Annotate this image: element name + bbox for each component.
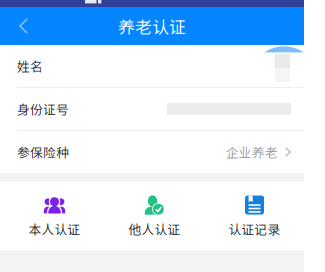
button[interactable]: 认证记录	[204, 182, 304, 250]
staticText: 他人认证	[128, 220, 180, 238]
button[interactable]: Back	[0, 7, 46, 45]
staticText: 参保险种	[17, 143, 69, 161]
button[interactable]: 他人认证	[104, 182, 204, 250]
staticText: 本人认证	[28, 220, 80, 238]
staticText: 认证记录	[228, 220, 280, 238]
staticText: 姓名	[17, 57, 43, 75]
button[interactable]: 本人认证	[4, 182, 104, 250]
staticText: 养老认证	[118, 14, 186, 38]
staticText: 身份证号	[17, 100, 69, 118]
staticText: 企业养老	[226, 143, 278, 161]
